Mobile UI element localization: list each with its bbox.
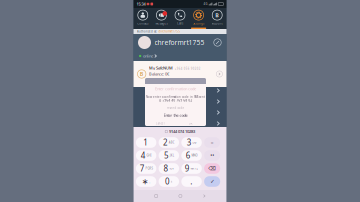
staticText: +964 056 90202 — [175, 67, 201, 70]
staticText: 1 — [143, 137, 148, 148]
staticText: online — [143, 53, 153, 59]
staticText: to +964 40 769 68 02 — [158, 99, 192, 102]
button[interactable]: Edit profile — [213, 38, 222, 47]
staticText: Settings — [193, 22, 204, 25]
staticText: ✓ — [210, 178, 214, 185]
staticText: Balance: 0€ — [149, 71, 169, 77]
staticText: chreformrt1755 — [158, 30, 180, 33]
button[interactable]: Cancel — [145, 121, 175, 127]
staticText: 6 — [186, 150, 191, 161]
button[interactable]: Recents — [155, 195, 158, 197]
staticText: 15:34 — [136, 1, 145, 7]
staticText: 9144 074 10283 — [169, 129, 195, 134]
button[interactable]: Home — [179, 194, 182, 198]
staticText: Enter the code — [163, 112, 187, 118]
button[interactable]: Messages — [152, 8, 171, 29]
button[interactable]: Setting — [133, 107, 226, 118]
staticText: 4G — [204, 2, 208, 6]
staticText: Calls — [177, 22, 183, 25]
staticText: B — [215, 12, 219, 19]
staticText: ∗ — [142, 177, 149, 186]
button[interactable]: Setting — [133, 118, 226, 129]
staticText: 5 — [164, 150, 169, 161]
staticText: 7 — [140, 163, 145, 174]
button[interactable]: 7 — [136, 163, 156, 174]
button[interactable]: 8 — [159, 163, 179, 174]
staticText: Account — [212, 22, 223, 25]
staticText: PQRS — [145, 167, 152, 170]
staticText: 0 — [165, 176, 170, 187]
staticText: Now enter a confirmation code in SMS sen… — [146, 95, 205, 99]
button[interactable]: ∗ — [136, 176, 156, 187]
staticText: ABC — [169, 141, 175, 144]
button[interactable]: OK — [175, 121, 206, 127]
staticText: ⌫ — [208, 165, 216, 172]
button[interactable]: Backspace — [204, 163, 220, 174]
button[interactable]: 4 — [136, 150, 156, 161]
staticText: WXYZ — [190, 167, 198, 170]
button[interactable]: 9 — [181, 163, 202, 174]
staticText: chreformrt1755 — [155, 38, 205, 47]
staticText: Cancel — [156, 122, 165, 125]
button[interactable]: 5 — [159, 150, 179, 161]
staticText: TUV — [169, 167, 174, 170]
button[interactable]: 6 — [181, 150, 202, 161]
staticText: 3 — [187, 137, 192, 148]
button[interactable]: Dash — [204, 137, 220, 148]
staticText: MNO — [191, 154, 197, 157]
staticText: Enter confirmation code — [155, 86, 196, 91]
staticText: 2 — [163, 137, 168, 148]
staticText: . — [190, 176, 192, 187]
button[interactable]: Contacts — [133, 8, 152, 29]
staticText: 8 — [163, 163, 168, 174]
staticText: Contacts — [137, 22, 148, 25]
staticText: + — [171, 180, 173, 183]
staticText: – — [211, 139, 214, 146]
staticText: •• — [210, 152, 214, 159]
staticText: 4 — [141, 150, 146, 161]
button[interactable]: Calls — [171, 8, 189, 29]
staticText: My SafeNUM — [149, 65, 173, 70]
staticText: 9 — [185, 163, 190, 174]
button[interactable]: 2 — [159, 137, 179, 148]
button[interactable]: 0 — [159, 176, 179, 187]
button[interactable]: Account — [208, 8, 226, 29]
button[interactable]: My SafeNUM balance — [133, 61, 226, 87]
staticText: resend code — [166, 106, 184, 110]
button[interactable]: Setting — [133, 96, 226, 107]
button[interactable]: 3 — [181, 137, 202, 148]
staticText: Messages — [155, 22, 167, 25]
button[interactable]: Wait — [204, 150, 220, 161]
staticText: OK — [189, 122, 193, 125]
button[interactable]: Setting — [133, 85, 226, 96]
staticText: B — [140, 70, 144, 78]
button[interactable]: Enter — [204, 176, 220, 187]
button[interactable]: Enter the code — [145, 112, 206, 118]
staticText: JKL — [170, 154, 174, 157]
staticText: Authorized as: — [137, 30, 157, 33]
button[interactable]: Back — [203, 194, 205, 198]
staticText: GHI — [146, 154, 151, 157]
button[interactable]: . — [181, 176, 202, 187]
button[interactable]: Settings — [189, 8, 208, 29]
staticText: DEF — [192, 141, 196, 144]
button[interactable]: 1 — [136, 137, 156, 148]
